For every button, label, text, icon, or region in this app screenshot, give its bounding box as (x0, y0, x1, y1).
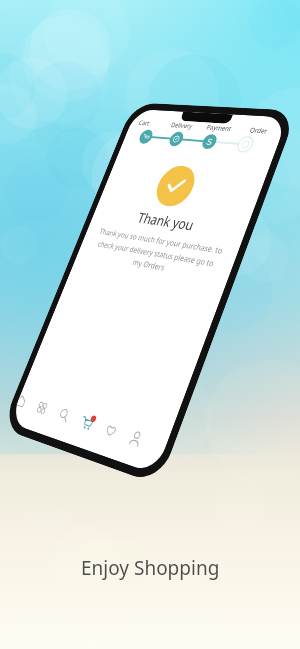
staticText: Order (249, 125, 269, 135)
staticText: Cart (138, 118, 151, 127)
staticText: Payment (205, 123, 233, 133)
staticText: Thank you so much for your purchase. to … (88, 226, 225, 282)
button[interactable]: Home (13, 386, 36, 418)
button[interactable]: Categories (26, 391, 58, 425)
button[interactable]: Cart (71, 405, 104, 441)
staticText: Delivery (170, 120, 194, 130)
staticText: Thank you (135, 208, 198, 234)
staticText: Enjoy Shopping (81, 555, 220, 581)
button[interactable]: Search (48, 398, 80, 433)
button[interactable]: Favourites (94, 412, 128, 449)
button[interactable]: Profile (118, 420, 154, 458)
